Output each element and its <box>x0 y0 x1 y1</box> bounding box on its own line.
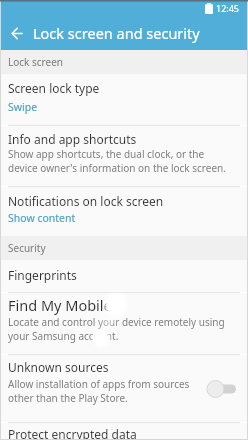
staticText: Lock screen <box>8 55 64 69</box>
staticText: Info and app shortcuts <box>8 131 137 147</box>
staticText: Show app shortcuts, the dual clock, or t… <box>8 147 205 161</box>
button[interactable]: Screen lock type <box>0 74 248 125</box>
staticText: 12:45 <box>216 2 240 14</box>
staticText: Fingerprints <box>8 267 77 283</box>
staticText: Protect encrypted data <box>8 426 137 440</box>
button[interactable] <box>5 22 27 44</box>
staticText: device owner's information on the lock s… <box>8 161 226 175</box>
staticText: Lock screen and security <box>33 23 200 43</box>
staticText: Swipe <box>8 100 38 114</box>
staticText: Show content <box>8 211 76 225</box>
button[interactable]: Info and app shortcuts <box>0 126 248 186</box>
staticText: other than the Play Store. <box>8 391 128 405</box>
staticText: Screen lock type <box>8 80 100 96</box>
button[interactable]: Notifications on lock screen <box>0 187 248 236</box>
button[interactable]: Find My Mobile <box>0 293 248 354</box>
staticText: Locate and control your device remotely … <box>8 315 225 329</box>
staticText: your Samsung account. <box>8 329 119 343</box>
button[interactable]: Protect encrypted data <box>0 423 248 440</box>
staticText: Find My Mobile <box>8 295 112 315</box>
staticText: Security <box>8 241 46 255</box>
staticText: Notifications on lock screen <box>8 193 164 209</box>
staticText: Allow installation of apps from sources <box>8 377 190 391</box>
button[interactable]: Fingerprints <box>0 260 248 292</box>
staticText: Unknown sources <box>8 359 109 375</box>
button[interactable]: Unknown sources <box>0 355 248 422</box>
